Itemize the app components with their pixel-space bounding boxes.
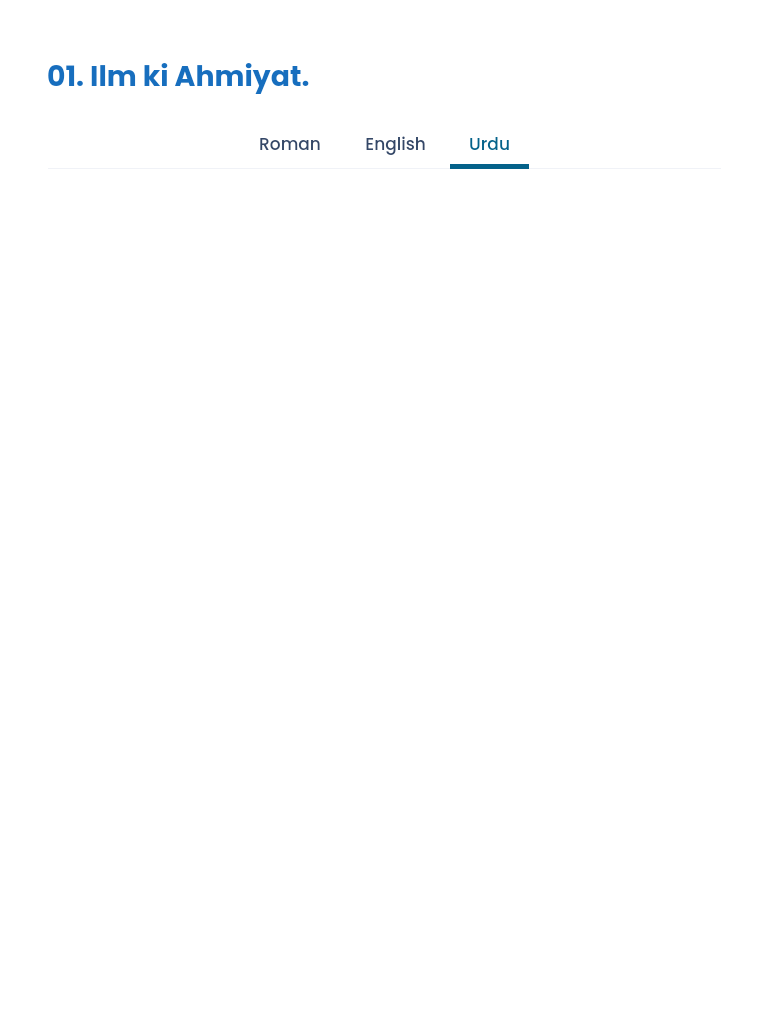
button[interactable]: Roman bbox=[240, 132, 340, 169]
staticText: English bbox=[365, 132, 426, 156]
button[interactable]: Urdu bbox=[450, 132, 529, 169]
staticText: Urdu bbox=[469, 132, 510, 156]
staticText: 01. Ilm ki Ahmiyat. bbox=[47, 56, 310, 96]
staticText: Roman bbox=[259, 132, 321, 156]
button[interactable]: English bbox=[346, 132, 445, 169]
